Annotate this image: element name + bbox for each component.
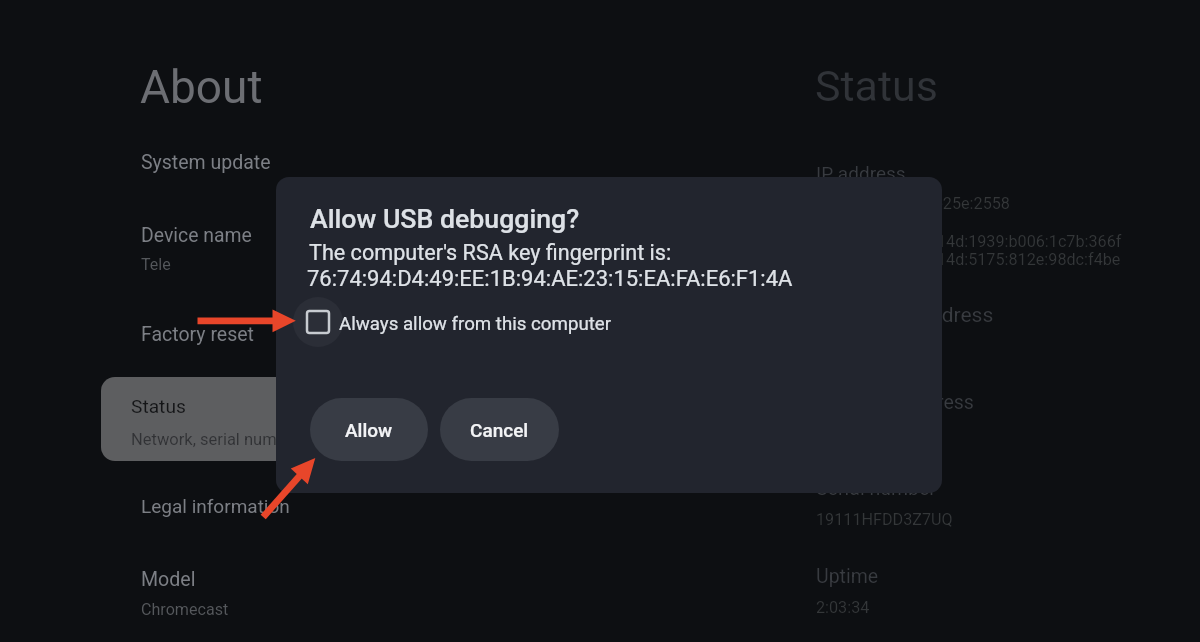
- staticText: 2409:4062:2384:14d:1939:b006:1c7b:366f: [816, 232, 1122, 251]
- staticText: About: [140, 60, 263, 114]
- staticText: Uptime: [816, 565, 879, 588]
- staticText: IP address: [816, 162, 906, 184]
- button[interactable]: Cancel: [440, 398, 559, 461]
- staticText: Allow: [345, 419, 393, 441]
- button[interactable]: Allow: [310, 398, 428, 461]
- button[interactable]: Status: [101, 377, 423, 461]
- staticText: Device name: [141, 224, 252, 247]
- staticText: Always allow from this computer: [339, 313, 612, 335]
- button[interactable]: Legal information: [101, 486, 423, 538]
- button[interactable]: Model: [101, 558, 423, 628]
- staticText: Bluetooth address: [816, 391, 974, 414]
- staticText: 19111HFDD3Z7UQ: [816, 510, 953, 529]
- staticText: Network, serial number, uptime: [131, 430, 358, 449]
- button[interactable]: Device name: [101, 213, 423, 283]
- staticText: Factory reset: [141, 323, 254, 346]
- staticText: Wi-Fi MAC address: [816, 303, 994, 328]
- staticText: Status: [131, 395, 186, 418]
- staticText: 2409:4062:2384:14d:5175:812e:98dc:f4be: [816, 250, 1121, 269]
- button[interactable]: Checkbox, unchecked: [293, 297, 633, 347]
- staticText: The computer's RSA key fingerprint is:: [309, 240, 672, 265]
- staticText: Allow USB debugging?: [310, 203, 580, 234]
- staticText: Legal information: [141, 495, 290, 517]
- staticText: System update: [141, 151, 271, 174]
- staticText: 76:74:94:D4:49:EE:1B:94:AE:23:15:EA:FA:E…: [307, 266, 793, 292]
- staticText: Tele: [141, 255, 171, 274]
- staticText: Serial number: [816, 477, 936, 500]
- staticText: Model: [141, 568, 196, 591]
- staticText: Chromecast: [141, 600, 229, 619]
- staticText: 2:03:34: [816, 598, 870, 617]
- staticText: fe80::5c8b:a0ff:fe25e:2558: [816, 194, 1010, 213]
- button[interactable]: System update: [101, 140, 423, 192]
- staticText: Status: [815, 61, 938, 111]
- staticText: Cancel: [470, 419, 529, 441]
- button[interactable]: Factory reset: [101, 313, 423, 365]
- other: Checkbox, unchecked: [293, 297, 343, 347]
